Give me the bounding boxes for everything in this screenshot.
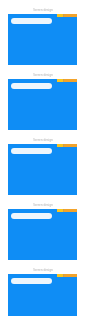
staticText: Screen design [0, 203, 86, 207]
staticText: Screen design [0, 138, 86, 142]
staticText: Screen design [0, 268, 86, 272]
button[interactable] [8, 144, 77, 195]
staticText: Screen design [0, 8, 86, 12]
button[interactable] [8, 79, 77, 130]
button[interactable] [8, 14, 77, 65]
button[interactable] [8, 209, 77, 260]
staticText: Screen design [0, 73, 86, 77]
button[interactable] [8, 274, 77, 316]
